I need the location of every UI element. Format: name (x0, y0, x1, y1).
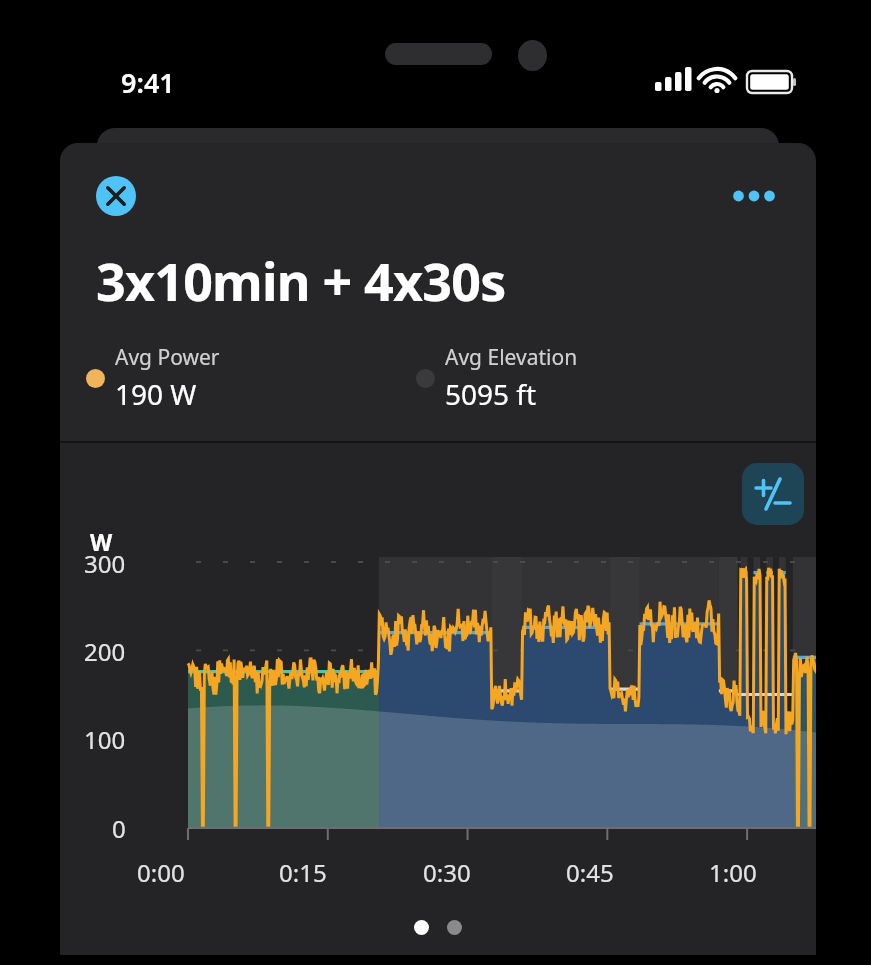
staticText: 5095 ft (445, 375, 537, 413)
staticText: 0 (112, 812, 126, 842)
button[interactable]: Page 1 (414, 920, 429, 935)
button[interactable]: More options (728, 176, 780, 216)
staticText: 1:00 (709, 856, 757, 889)
button[interactable]: Close (96, 176, 136, 216)
staticText: 0:00 (137, 856, 185, 889)
staticText: 3x10min + 4x30s (96, 245, 506, 316)
staticText: 300 (84, 547, 126, 577)
staticText: 190 W (115, 375, 197, 413)
staticText: 9:41 (121, 64, 175, 101)
staticText: 0:45 (566, 856, 614, 889)
staticText: Avg Elevation (445, 343, 578, 372)
staticText: 100 (84, 723, 126, 753)
staticText: Avg Power (115, 343, 220, 372)
staticText: 0:30 (423, 856, 471, 889)
button[interactable]: Adjust scale (742, 463, 804, 525)
staticText: 0:15 (279, 856, 327, 889)
staticText: 200 (84, 635, 126, 665)
button[interactable]: Page 2 (447, 920, 462, 935)
staticText: W (90, 526, 113, 557)
